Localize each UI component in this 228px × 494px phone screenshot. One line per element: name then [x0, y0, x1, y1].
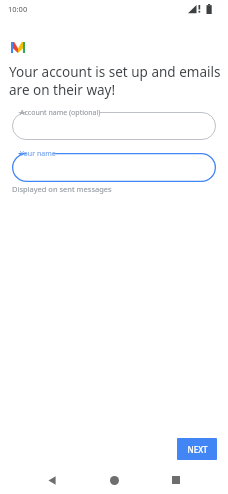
button[interactable]: Back	[38, 466, 66, 494]
button[interactable]: Home	[100, 466, 128, 494]
staticText: 10:00	[8, 4, 28, 14]
staticText: Displayed on sent messages	[12, 184, 112, 194]
staticText: Your name	[20, 149, 56, 159]
button[interactable]: Your name	[12, 153, 216, 182]
staticText: NEXT	[187, 444, 208, 455]
staticText: Account name (optional)	[20, 108, 101, 118]
button[interactable]: NEXT	[177, 438, 217, 460]
button[interactable]: Account name (optional)	[12, 112, 216, 140]
button[interactable]: Recent apps	[162, 466, 190, 494]
staticText: Your account is set up and emails are on…	[9, 63, 221, 99]
